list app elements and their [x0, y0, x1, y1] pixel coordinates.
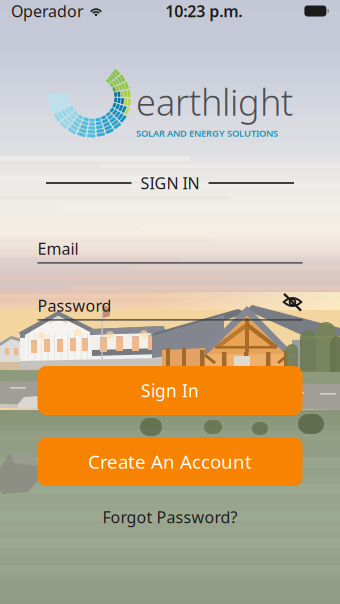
button[interactable]: Show password [268, 291, 302, 313]
staticText: Sign In [141, 379, 199, 402]
button[interactable]: Create An Account [37, 437, 302, 486]
button[interactable]: Forgot Password? [37, 508, 302, 526]
staticText: Operador [11, 0, 84, 22]
staticText: Forgot Password? [102, 506, 237, 528]
button[interactable]: Sign In [37, 366, 302, 415]
staticText: SIGN IN [140, 172, 199, 194]
staticText: Create An Account [88, 449, 252, 474]
staticText: earthlight [136, 78, 293, 126]
staticText: SOLAR AND ENERGY SOLUTIONS [136, 127, 278, 139]
staticText: Email [37, 238, 78, 259]
staticText: Password [37, 295, 111, 316]
staticText: 10:23 p.m. [165, 0, 242, 22]
